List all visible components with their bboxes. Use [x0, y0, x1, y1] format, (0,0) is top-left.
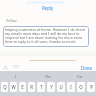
staticText: helping customers at home. However I do … — [5, 27, 87, 44]
staticText: E — [21, 84, 24, 90]
button[interactable]: I — [67, 82, 75, 92]
button[interactable]: Y — [47, 82, 55, 92]
button[interactable]: R — [28, 82, 35, 92]
button[interactable]: E — [19, 82, 26, 92]
staticText: R — [30, 84, 33, 90]
staticText: Done — [81, 65, 93, 71]
staticText: I — [15, 74, 17, 79]
staticText: Reply — [42, 5, 54, 11]
button[interactable]: Formatting — [1, 63, 9, 71]
staticText: W — [11, 84, 16, 90]
button[interactable]: The — [32, 71, 64, 82]
button[interactable]: Q — [1, 82, 8, 92]
button[interactable]: Done — [77, 64, 96, 71]
button[interactable]: I'm — [64, 71, 96, 82]
staticText: Yellow — [6, 18, 17, 23]
staticText: O — [79, 84, 83, 90]
staticText: I — [70, 84, 72, 90]
staticText: I'm — [77, 74, 83, 79]
staticText: Q — [3, 84, 7, 90]
button[interactable]: W — [10, 82, 17, 92]
button[interactable]: I — [0, 71, 32, 82]
button[interactable]: T — [37, 82, 45, 92]
staticText: Y — [50, 84, 53, 90]
staticText: P — [90, 84, 93, 90]
staticText: U — [59, 84, 63, 90]
button[interactable]: O — [77, 82, 85, 92]
button[interactable]: P — [87, 82, 95, 92]
button[interactable]: U — [57, 82, 65, 92]
staticText: T — [40, 84, 43, 90]
staticText: The — [45, 74, 52, 79]
button[interactable]: helping customers at home. However I do … — [3, 26, 89, 47]
button[interactable]: Attach file — [12, 63, 20, 71]
